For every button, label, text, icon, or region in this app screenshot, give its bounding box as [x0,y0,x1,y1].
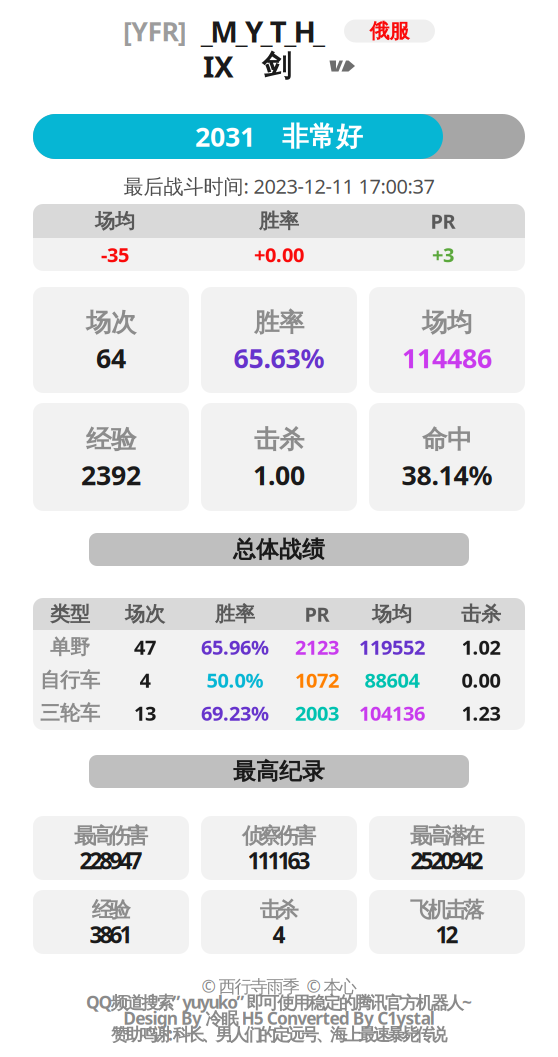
button[interactable]: 俄服 [344,19,435,42]
staticText: 50.0% [206,667,263,693]
staticText: 3861 [89,919,132,949]
staticText: 65.63% [233,340,324,376]
staticText: 经验 [92,897,130,923]
staticText: 2520942 [410,845,483,875]
staticText: 最后战斗时间: 2023-12-11 17:00:37 [123,173,434,199]
staticText: 胜率 [215,602,255,626]
staticText: 场次 [86,307,136,338]
staticText: 击杀 [254,424,304,455]
staticText: 4 [139,667,150,693]
staticText: _M_Y_T_H_ [201,11,325,50]
staticText: 69.23% [201,700,269,726]
staticText: QQ频道搜索” yuyuko” 即可使用稳定的腾讯官方机器人~ [86,990,472,1013]
staticText: 类型 [50,602,90,626]
staticText: 俄服 [369,19,409,43]
staticText: © 西行寺雨季 © 本心 [201,974,356,997]
staticText: 65.96% [201,634,269,660]
staticText: 1.23 [461,700,500,726]
staticText: 47 [134,634,156,660]
staticText: 单野 [50,635,90,659]
staticText: 剑 [262,48,291,84]
staticText: Design By 冷眠 H5 Converted By C1ystal [123,1006,435,1029]
staticText: 三轮车 [40,701,100,725]
staticText: 119552 [359,634,425,660]
staticText: 自行车 [40,668,100,692]
staticText: 4 [272,919,285,949]
staticText: 114486 [402,340,492,376]
staticText: PR [304,601,329,627]
staticText: 1072 [295,667,339,693]
staticText: 1.00 [253,457,305,493]
staticText: 0.00 [461,667,500,693]
staticText: -35 [101,241,129,268]
staticText: 侦察伤害 [242,823,316,849]
staticText: 2392 [81,457,141,493]
staticText: 击杀 [260,897,298,923]
staticText: 2123 [295,634,339,660]
staticText: 88604 [364,667,419,693]
staticText: 场均 [95,209,135,233]
staticText: 13 [134,700,156,726]
staticText: 最高伤害 [74,823,148,849]
staticText: 场次 [125,602,165,626]
staticText: 经验 [86,424,136,455]
staticText: 104136 [359,700,425,726]
staticText: 最高潜在 [410,823,484,849]
staticText: +3 [432,241,454,268]
staticText: [YFR] [123,13,187,49]
staticText: IX [203,46,234,85]
staticText: 2031 [195,119,255,154]
staticText: 总体战绩 [233,536,325,563]
staticText: 命中 [422,424,472,455]
staticText: 最高纪录 [233,758,325,785]
staticText: 赞助鸣谢: 科长、男人们的定远号、海上最速暴毙传说 [111,1022,447,1045]
staticText: 228947 [79,845,142,875]
staticText: 64 [96,340,126,376]
staticText: 场均 [372,602,412,626]
staticText: 胜率 [259,209,299,233]
staticText: 12 [435,919,458,949]
staticText: 111163 [247,845,310,875]
staticText: 胜率 [254,307,304,338]
staticText: 场均 [422,307,472,338]
staticText: 1.02 [461,634,500,660]
staticText: 2003 [295,700,339,726]
staticText: +0.00 [254,241,304,268]
staticText: 飞机击落 [410,897,484,923]
staticText: 非常好 [282,120,363,153]
staticText: 击杀 [461,602,501,626]
staticText: PR [430,208,455,234]
staticText: 38.14% [401,457,492,493]
